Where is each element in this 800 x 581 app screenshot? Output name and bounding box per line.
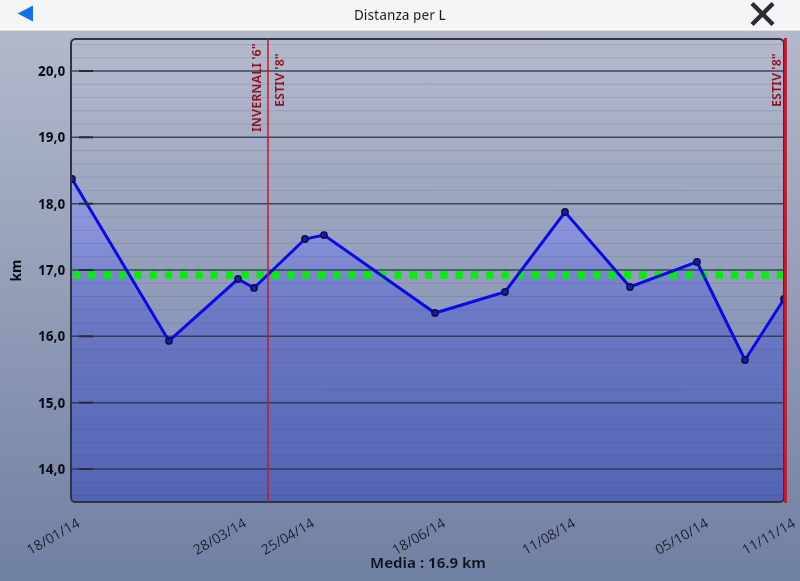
button[interactable]: Close: [752, 0, 800, 30]
button[interactable]: Back: [0, 0, 48, 30]
staticText: Distanza per L: [354, 6, 446, 24]
